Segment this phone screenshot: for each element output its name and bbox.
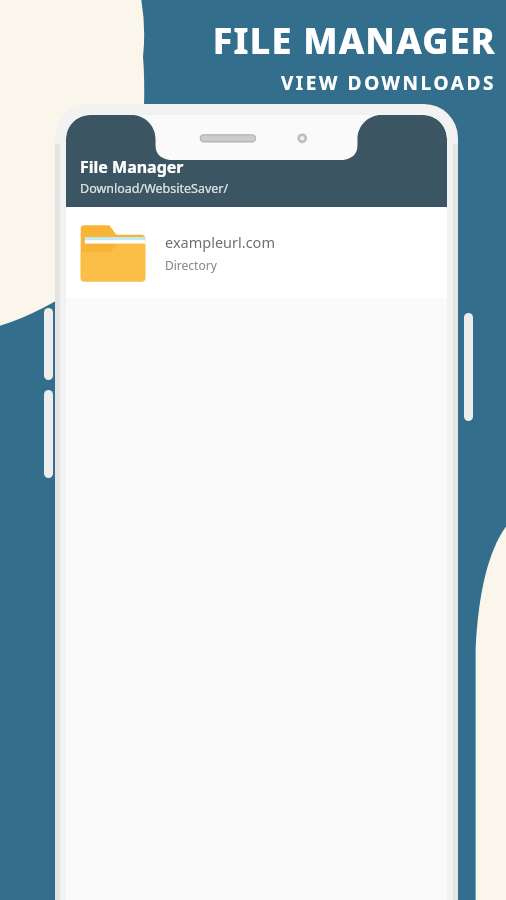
button[interactable]: exampleurl.com (66, 207, 447, 298)
staticText: FILE MANAGER (212, 16, 496, 65)
staticText: VIEW DOWNLOADS (280, 70, 496, 96)
staticText: File Manager (80, 156, 184, 178)
staticText: Download/WebsiteSaver/ (80, 180, 229, 197)
staticText: exampleurl.com (165, 232, 275, 252)
staticText: Directory (165, 257, 217, 273)
